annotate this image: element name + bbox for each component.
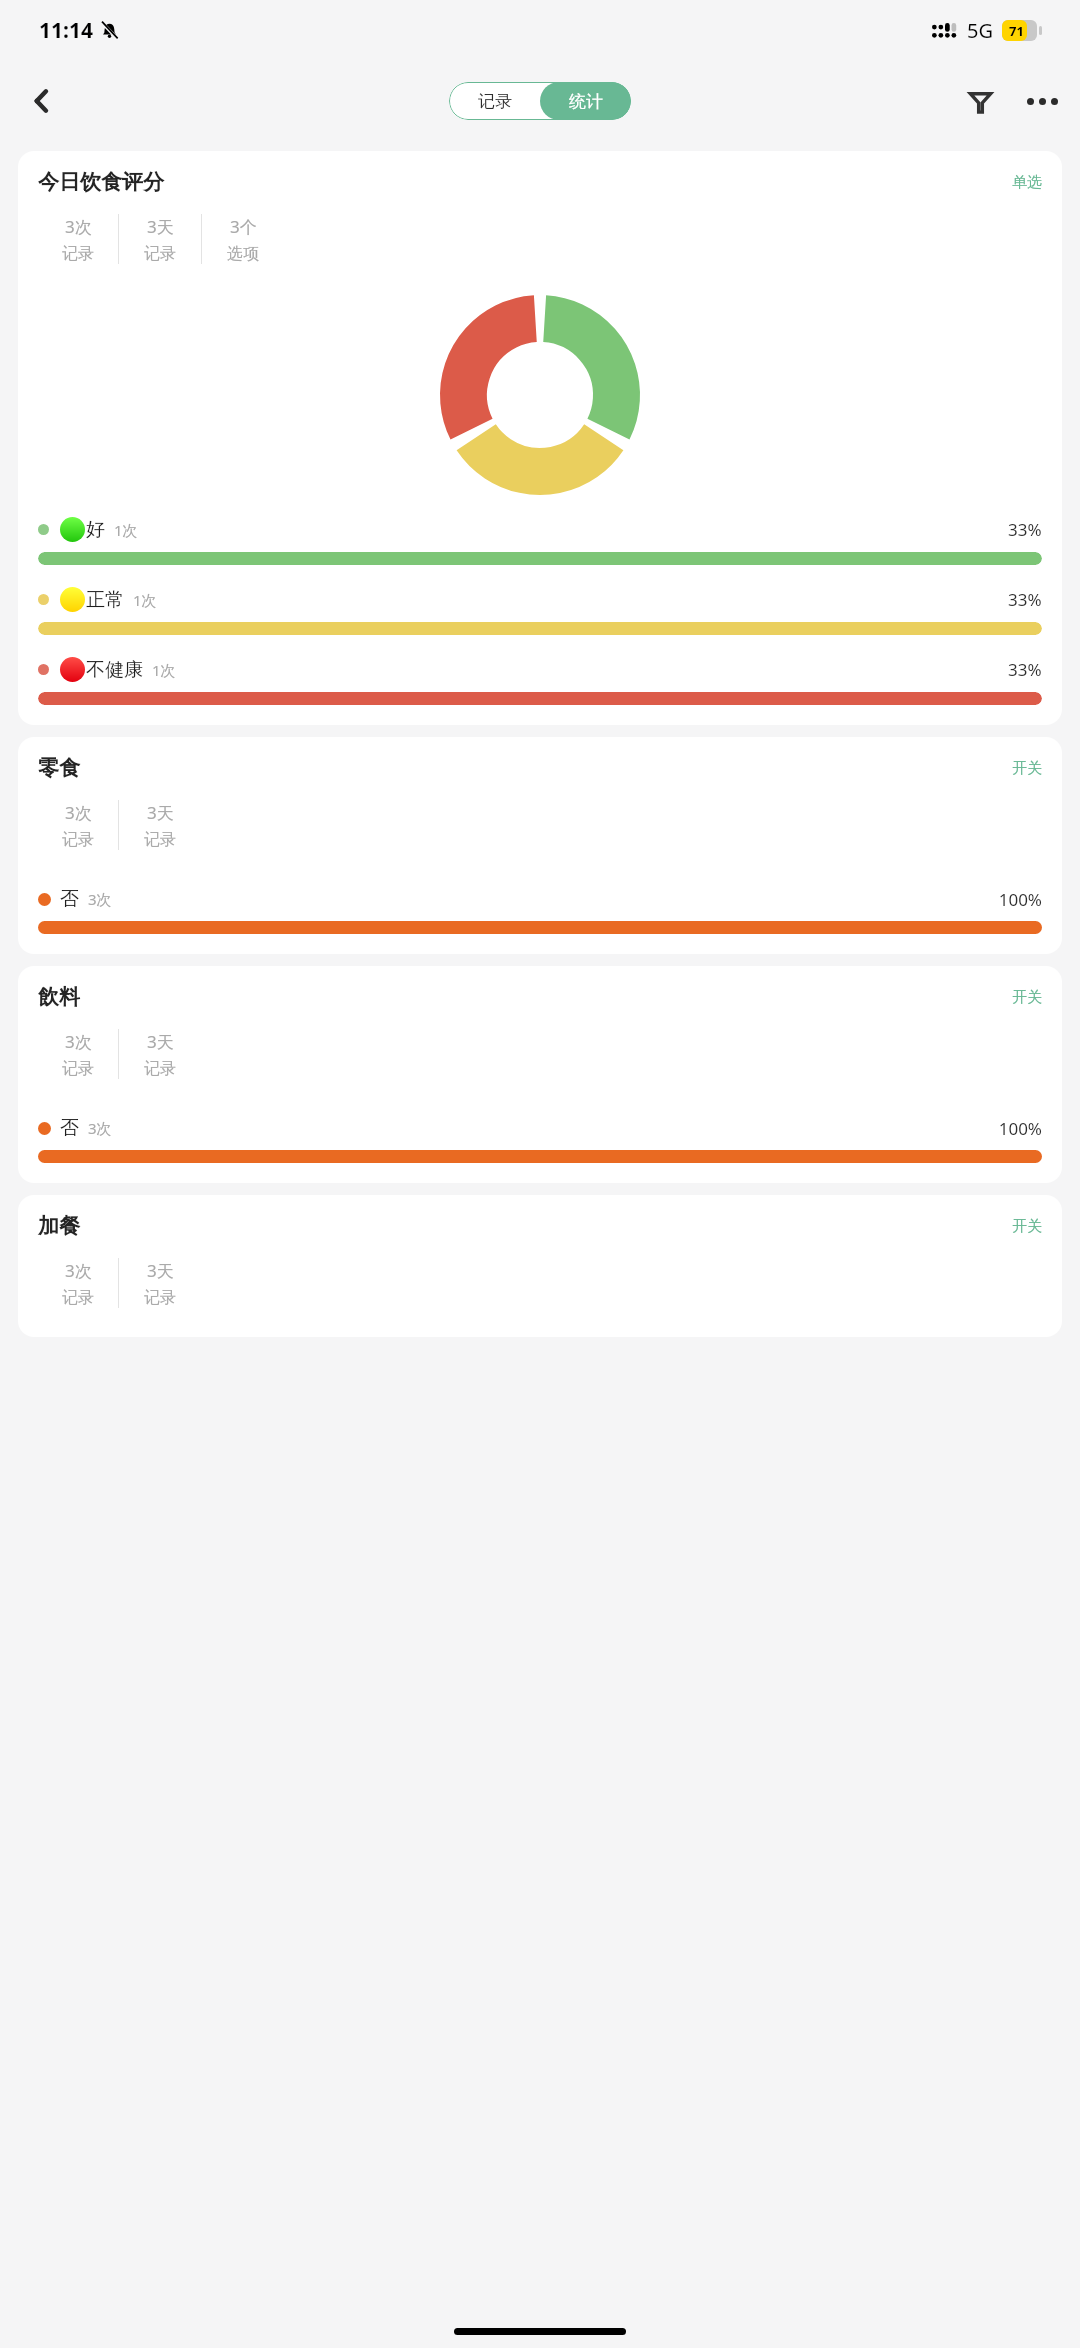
staticText: 3次 (65, 1030, 92, 1053)
staticText: 记录 (62, 244, 94, 264)
staticText: 1次 (152, 660, 176, 680)
staticText: 正常 (86, 588, 124, 612)
staticText: 100% (998, 888, 1042, 911)
button[interactable]: More options (1018, 77, 1066, 125)
staticText: 飲料 (38, 984, 80, 1010)
staticText: 选项 (227, 244, 259, 264)
staticText: 记录 (144, 830, 176, 850)
staticText: 3天 (147, 215, 174, 238)
staticText: 3个 (230, 215, 257, 238)
staticText: 3次 (65, 215, 92, 238)
button[interactable]: Back (18, 77, 66, 125)
staticText: 零食 (38, 755, 80, 781)
staticText: 记录 (144, 1059, 176, 1079)
button[interactable]: 统计 (540, 82, 631, 120)
staticText: 3次 (88, 1118, 112, 1138)
staticText: 否 (60, 887, 79, 911)
staticText: 33% (1008, 658, 1042, 681)
staticText: 记录 (478, 91, 512, 112)
staticText: 统计 (569, 91, 603, 112)
staticText: 好 (86, 518, 105, 542)
staticText: 3次 (88, 889, 112, 909)
staticText: 记录 (62, 830, 94, 850)
staticText: 11:14 (39, 16, 93, 45)
staticText: 开关 (1012, 988, 1042, 1007)
button[interactable]: 飲料 (18, 966, 1062, 1183)
staticText: 不健康 (86, 658, 143, 682)
staticText: 开关 (1012, 759, 1042, 778)
button[interactable]: Filter (956, 77, 1004, 125)
button[interactable]: 单选 (1012, 173, 1042, 192)
staticText: 3天 (147, 801, 174, 824)
button[interactable]: 零食 (18, 737, 1062, 954)
staticText: 33% (1008, 588, 1042, 611)
button[interactable]: 开关 (1012, 1217, 1042, 1236)
staticText: 3天 (147, 1259, 174, 1282)
button[interactable]: 开关 (1012, 988, 1042, 1007)
staticText: 33% (1008, 518, 1042, 541)
button[interactable]: 开关 (1012, 759, 1042, 778)
staticText: 单选 (1012, 173, 1042, 192)
button[interactable]: 今日饮食评分 (18, 151, 1062, 725)
staticText: 1次 (133, 590, 157, 610)
staticText: 记录 (144, 244, 176, 264)
staticText: 记录 (62, 1288, 94, 1308)
staticText: 71 (1009, 22, 1024, 40)
staticText: 5G (967, 17, 993, 44)
staticText: 开关 (1012, 1217, 1042, 1236)
staticText: 1次 (114, 520, 138, 540)
staticText: 3次 (65, 801, 92, 824)
staticText: 否 (60, 1116, 79, 1140)
staticText: 记录 (144, 1288, 176, 1308)
staticText: 100% (998, 1117, 1042, 1140)
staticText: 今日饮食评分 (38, 169, 164, 195)
button[interactable]: 加餐 (18, 1195, 1062, 1337)
staticText: 加餐 (38, 1213, 80, 1239)
staticText: 3天 (147, 1030, 174, 1053)
staticText: 3次 (65, 1259, 92, 1282)
button[interactable]: 记录 (449, 82, 540, 120)
staticText: 记录 (62, 1059, 94, 1079)
